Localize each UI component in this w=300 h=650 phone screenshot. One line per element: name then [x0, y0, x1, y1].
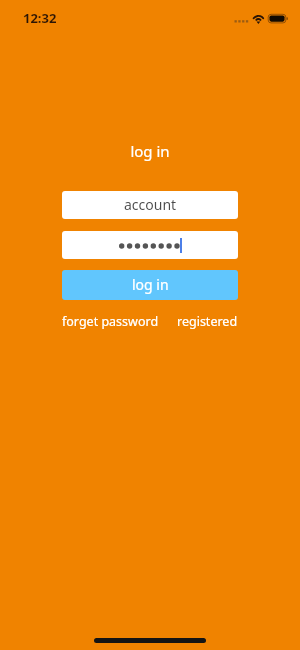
button[interactable]: registered	[177, 311, 238, 332]
other: Signal, wifi and battery status	[233, 12, 291, 25]
button[interactable]: log in	[62, 270, 238, 300]
staticText: log in	[0, 141, 300, 161]
button[interactable]: account	[62, 191, 238, 219]
staticText: registered	[177, 313, 238, 330]
staticText: 12:32	[23, 9, 57, 27]
staticText: log in	[132, 275, 169, 294]
button[interactable]	[62, 231, 238, 259]
button[interactable]: forget password	[62, 311, 159, 332]
staticText: forget password	[62, 313, 159, 330]
staticText: account	[124, 195, 177, 214]
